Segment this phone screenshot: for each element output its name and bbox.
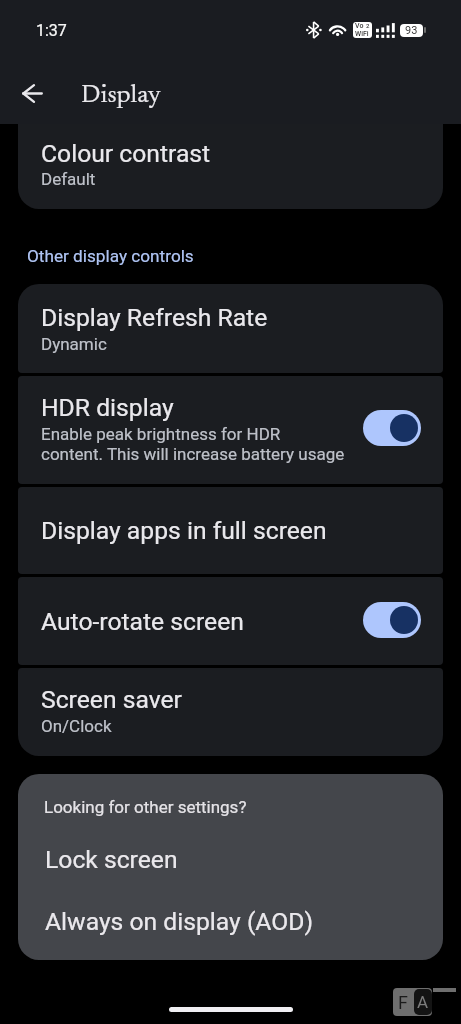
button[interactable]: Colour contrast	[18, 124, 443, 209]
staticText: Enable peak brightness for HDR content. …	[41, 424, 345, 464]
button[interactable]: Display apps in full screen	[18, 487, 443, 574]
staticText: 1:37	[36, 21, 67, 40]
staticText: Lock screen	[45, 845, 178, 874]
staticText: Always on display (AOD)	[45, 907, 314, 936]
button[interactable]: Back	[8, 69, 56, 117]
button[interactable]: Lock screen	[18, 831, 443, 887]
staticText: Looking for other settings?	[44, 797, 247, 817]
button[interactable]: Display Refresh Rate	[18, 284, 443, 373]
staticText: 93	[405, 24, 418, 37]
staticText: Other display controls	[27, 246, 194, 266]
staticText: Dynamic	[41, 334, 107, 354]
button[interactable]: Auto-rotate screen, on	[363, 602, 421, 638]
button[interactable]: HDR display, on	[363, 410, 421, 446]
staticText: Default	[41, 169, 96, 189]
staticText: On/Clock	[41, 716, 112, 736]
staticText: Vo	[355, 22, 364, 30]
staticText: Auto-rotate screen	[41, 607, 244, 636]
staticText: F	[398, 992, 408, 1013]
button[interactable]: Always on display (AOD)	[18, 891, 443, 951]
button[interactable]: Auto-rotate screen	[18, 577, 443, 665]
staticText: 2	[366, 22, 370, 29]
button[interactable]: Screen saver	[18, 668, 443, 756]
staticText: Display Refresh Rate	[41, 303, 268, 332]
staticText: WiFi	[355, 30, 369, 38]
button[interactable]: HDR display	[18, 376, 443, 484]
staticText: A	[417, 992, 429, 1012]
staticText: Display apps in full screen	[41, 516, 327, 545]
staticText: Display	[81, 83, 161, 109]
staticText: HDR display	[41, 393, 174, 422]
staticText: Screen saver	[41, 685, 182, 714]
staticText: Colour contrast	[41, 139, 211, 168]
